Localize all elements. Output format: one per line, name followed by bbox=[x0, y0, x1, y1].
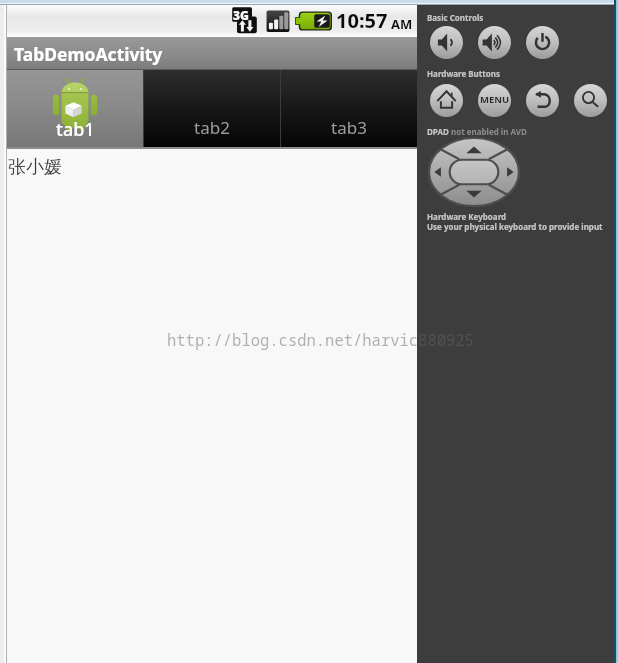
staticText: DPAD bbox=[427, 126, 451, 137]
button[interactable]: tab3 bbox=[280, 70, 417, 147]
button[interactable]: Search bbox=[574, 84, 607, 117]
button[interactable]: Back bbox=[526, 84, 559, 117]
staticText: Use your physical keyboard to provide in… bbox=[427, 221, 603, 232]
staticText: tab2 bbox=[194, 116, 230, 139]
staticText: TabDemoActivity bbox=[14, 42, 163, 66]
staticText: 3G bbox=[233, 7, 249, 23]
staticText: Basic Controls bbox=[427, 12, 484, 23]
staticText: MENU bbox=[480, 93, 510, 106]
staticText: not enabled in AVD bbox=[451, 126, 527, 137]
button[interactable]: tab2 bbox=[143, 70, 280, 147]
staticText: 张小媛 bbox=[8, 156, 62, 179]
staticText: http://blog.csdn.net/harvic880925 bbox=[167, 329, 474, 350]
staticText: 10:57 bbox=[336, 7, 388, 34]
staticText: tab1 bbox=[56, 117, 95, 142]
staticText: Hardware Keyboard bbox=[427, 211, 507, 222]
staticText: Hardware Buttons bbox=[427, 68, 500, 79]
button[interactable]: Menu bbox=[478, 84, 511, 117]
button[interactable]: Volume up bbox=[478, 26, 511, 59]
button[interactable]: tab1 bbox=[7, 70, 143, 147]
staticText: tab3 bbox=[331, 116, 367, 139]
button[interactable]: Power bbox=[526, 26, 559, 59]
button[interactable]: Volume down bbox=[430, 26, 463, 59]
staticText: AM bbox=[391, 15, 413, 33]
button[interactable]: Home bbox=[430, 84, 463, 117]
